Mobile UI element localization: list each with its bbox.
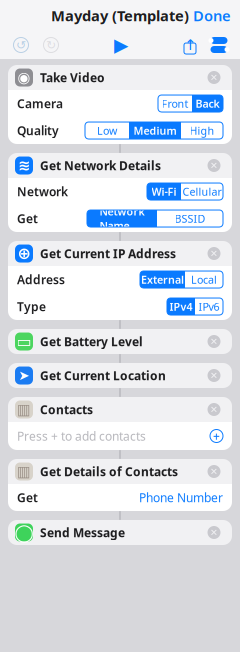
staticText: IPv4	[169, 299, 192, 314]
staticText: Get	[17, 210, 38, 226]
button[interactable]: Remove action	[203, 66, 225, 88]
staticText: Get Network Details	[40, 157, 161, 173]
button[interactable]: Remove action	[203, 154, 225, 176]
staticText: ✕	[210, 404, 218, 415]
staticText: Front	[161, 96, 188, 111]
staticText: Network Name	[99, 204, 144, 233]
button[interactable]: High	[181, 122, 223, 139]
button[interactable]: External	[140, 271, 185, 288]
staticText: Back	[195, 96, 219, 111]
button[interactable]: Medium	[129, 122, 181, 139]
button[interactable]: Front	[158, 95, 192, 112]
staticText: Cellular	[182, 184, 221, 199]
button[interactable]: Remove action	[203, 460, 225, 482]
staticText: Get Details of Contacts	[40, 463, 178, 479]
staticText: ▥	[17, 463, 31, 480]
button[interactable]: Network Name	[87, 210, 157, 227]
staticText: ✕	[210, 370, 218, 381]
staticText: Done	[193, 6, 231, 25]
staticText: ✕	[210, 248, 218, 259]
staticText: ✕	[210, 72, 218, 83]
staticText: Quality	[17, 122, 59, 138]
button[interactable]: Back	[192, 95, 223, 112]
staticText: IPv6	[198, 299, 219, 314]
staticText: ✕	[210, 527, 218, 538]
button[interactable]: Phone Number	[139, 489, 223, 505]
button[interactable]: Remove action	[203, 521, 225, 543]
staticText: ↺	[16, 38, 26, 52]
staticText: ◯	[14, 523, 33, 542]
staticText: BSSID	[174, 211, 205, 226]
button[interactable]: BSSID	[157, 210, 223, 227]
button[interactable]: Remove action	[203, 398, 225, 420]
staticText: Medium	[133, 123, 176, 138]
staticText: External	[141, 272, 184, 287]
button[interactable]: Local	[185, 271, 223, 288]
button[interactable]: Wi-Fi	[147, 183, 181, 200]
staticText: Mayday (Template)	[51, 6, 189, 25]
staticText: Get Current IP Address	[40, 245, 176, 261]
staticText: ↻	[46, 38, 56, 52]
staticText: Contacts	[40, 401, 93, 417]
button[interactable]: Low	[85, 122, 129, 139]
staticText: Get Current Location	[40, 367, 166, 383]
staticText: Press + to add contacts	[17, 428, 146, 444]
staticText: Take Video	[40, 69, 105, 85]
button[interactable]: Done	[184, 0, 240, 31]
button[interactable]: Run shortcut	[104, 32, 138, 58]
button[interactable]: Settings	[204, 32, 234, 58]
button[interactable]: Remove action	[203, 242, 225, 264]
staticText: High	[189, 123, 214, 138]
staticText: ▥	[17, 401, 31, 418]
staticText: Local	[191, 272, 217, 287]
staticText: +	[213, 428, 220, 444]
button[interactable]: Share	[176, 32, 204, 58]
staticText: Type	[17, 298, 46, 314]
staticText: ➤	[18, 368, 29, 383]
staticText: ▭	[16, 332, 31, 351]
staticText: Phone Number	[139, 489, 223, 505]
staticText: Get Battery Level	[40, 333, 143, 349]
button[interactable]: Remove action	[203, 364, 225, 386]
staticText: Wi-Fi	[151, 184, 176, 199]
staticText: Get	[17, 489, 38, 505]
staticText: ◉	[17, 69, 30, 86]
button[interactable]: IPv6	[195, 298, 223, 315]
button[interactable]: Cellular	[181, 183, 223, 200]
staticText: ✕	[210, 466, 218, 477]
button[interactable]: Press + to add contacts	[8, 422, 232, 450]
staticText: Network	[17, 183, 68, 199]
button[interactable]: Redo	[36, 32, 66, 58]
staticText: Address	[17, 271, 65, 287]
staticText: ▶	[114, 34, 128, 56]
staticText: ⊕	[17, 244, 30, 263]
button[interactable]: Undo	[6, 32, 36, 58]
staticText: Send Message	[40, 524, 125, 540]
staticText: Camera	[17, 95, 63, 111]
staticText: ↑	[184, 37, 196, 53]
staticText: ✕	[210, 160, 218, 171]
button[interactable]: IPv4	[167, 298, 195, 315]
button[interactable]: Remove action	[203, 330, 225, 352]
staticText: ≋	[18, 157, 30, 174]
staticText: ✕	[210, 336, 218, 347]
staticText: Low	[97, 123, 117, 138]
